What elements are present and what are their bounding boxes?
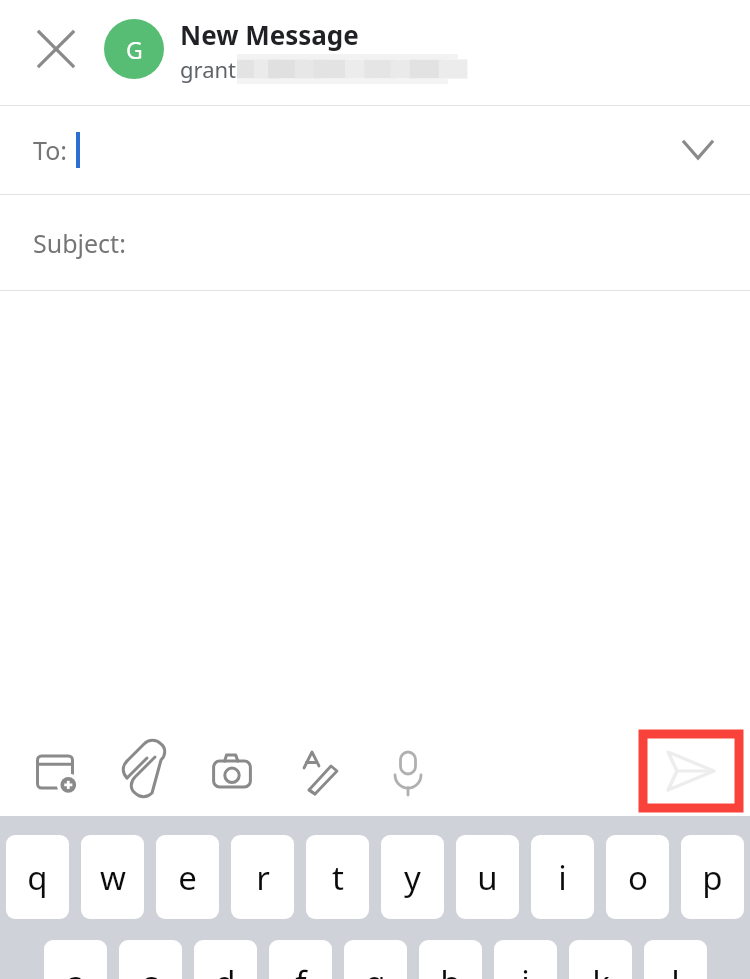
button[interactable]: f xyxy=(269,940,332,979)
button[interactable]: j xyxy=(494,940,557,979)
staticText: y xyxy=(404,855,421,900)
staticText: t xyxy=(332,855,344,900)
button[interactable]: Close xyxy=(20,13,92,85)
button[interactable]: d xyxy=(194,940,257,979)
staticText: Subject: xyxy=(33,226,126,260)
button[interactable]: Subject: xyxy=(0,195,750,290)
staticText: G xyxy=(126,34,143,65)
button[interactable]: k xyxy=(569,940,632,979)
staticText: f xyxy=(295,960,307,979)
button[interactable]: e xyxy=(156,835,219,919)
button[interactable]: o xyxy=(606,835,669,919)
button[interactable]: q xyxy=(6,835,69,919)
button[interactable]: Attach file xyxy=(110,738,178,806)
staticText: u xyxy=(477,855,498,900)
staticText: l xyxy=(671,960,680,979)
button[interactable]: Show Cc and Bcc xyxy=(668,120,728,180)
button[interactable]: l xyxy=(644,940,707,979)
button[interactable]: u xyxy=(456,835,519,919)
staticText: i xyxy=(558,855,567,900)
staticText: grant xyxy=(180,54,237,84)
staticText: o xyxy=(628,855,648,900)
staticText: p xyxy=(702,855,723,900)
staticText: s xyxy=(143,960,159,979)
staticText: d xyxy=(215,960,236,979)
button[interactable]: g xyxy=(344,940,407,979)
staticText: g xyxy=(365,960,386,979)
staticText: h xyxy=(440,960,461,979)
staticText: w xyxy=(100,855,126,900)
staticText: q xyxy=(27,855,48,900)
button[interactable]: h xyxy=(419,940,482,979)
staticText: r xyxy=(256,855,270,900)
staticText: To: xyxy=(33,133,67,167)
button[interactable]: Dictate xyxy=(374,738,442,806)
button[interactable]: Insert calendar event xyxy=(22,738,90,806)
button[interactable]: Send xyxy=(643,734,739,808)
button[interactable]: w xyxy=(81,835,144,919)
button[interactable]: i xyxy=(531,835,594,919)
button[interactable]: Take photo xyxy=(198,738,266,806)
staticText: j xyxy=(521,960,530,979)
button[interactable]: y xyxy=(381,835,444,919)
button[interactable]: To: xyxy=(0,106,750,194)
staticText: e xyxy=(178,855,197,900)
button[interactable]: r xyxy=(231,835,294,919)
staticText: New Message xyxy=(180,17,359,52)
button[interactable]: Markup xyxy=(286,738,354,806)
staticText: k xyxy=(592,960,610,979)
staticText: a xyxy=(66,960,85,979)
button[interactable]: G xyxy=(104,19,164,79)
button[interactable]: a xyxy=(44,940,107,979)
button[interactable]: t xyxy=(306,835,369,919)
button[interactable]: p xyxy=(681,835,744,919)
button[interactable]: s xyxy=(119,940,182,979)
